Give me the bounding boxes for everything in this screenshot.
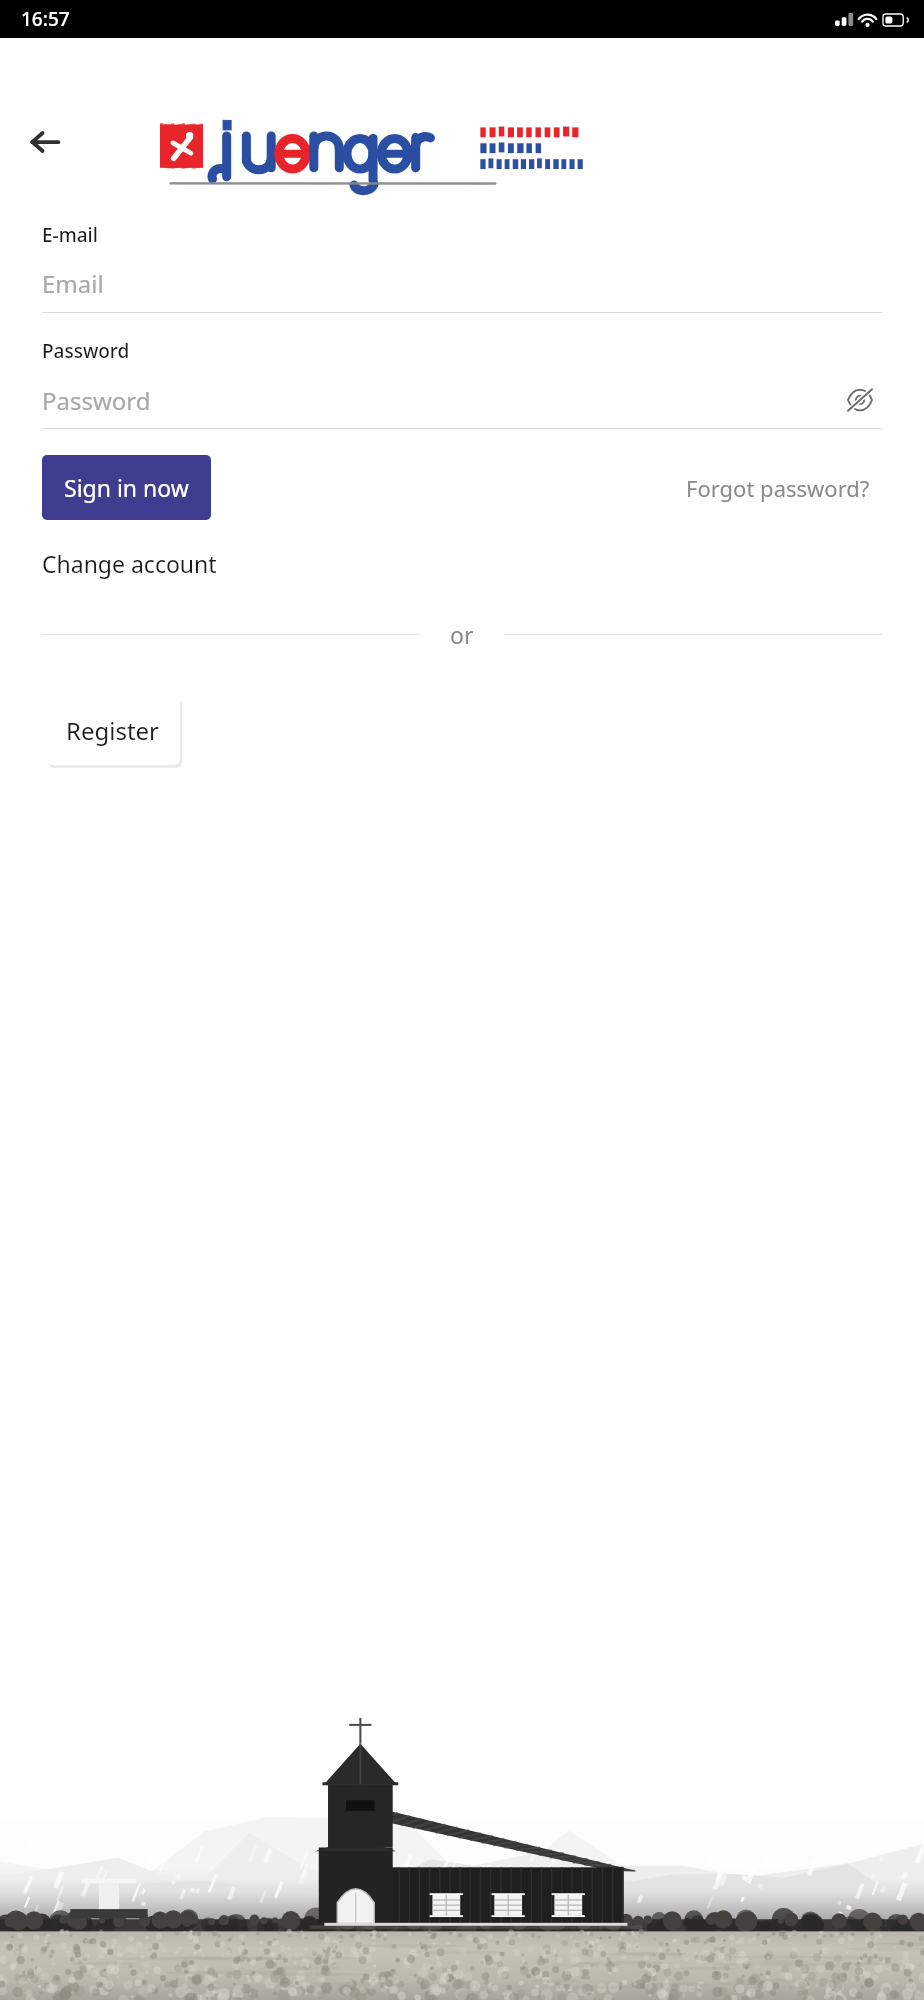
staticText: Forgot password?: [686, 473, 870, 503]
staticText: Email: [42, 267, 104, 300]
button[interactable]: Show password: [838, 380, 882, 420]
staticText: 16:57: [21, 6, 70, 32]
button[interactable]: Email: [42, 264, 882, 302]
staticText: or: [450, 619, 474, 650]
staticText: E-mail: [42, 222, 98, 248]
button[interactable]: Register: [46, 696, 180, 765]
staticText: Password: [42, 384, 151, 417]
staticText: Change account: [42, 548, 217, 579]
staticText: Password: [42, 338, 130, 364]
button[interactable]: Forgot password?: [678, 463, 878, 513]
staticText: Sign in now: [64, 472, 189, 503]
staticText: Register: [66, 714, 160, 747]
button[interactable]: Back: [16, 113, 74, 171]
button[interactable]: Change account: [42, 542, 217, 585]
button[interactable]: Password: [42, 380, 838, 420]
button[interactable]: Sign in now: [42, 455, 211, 520]
